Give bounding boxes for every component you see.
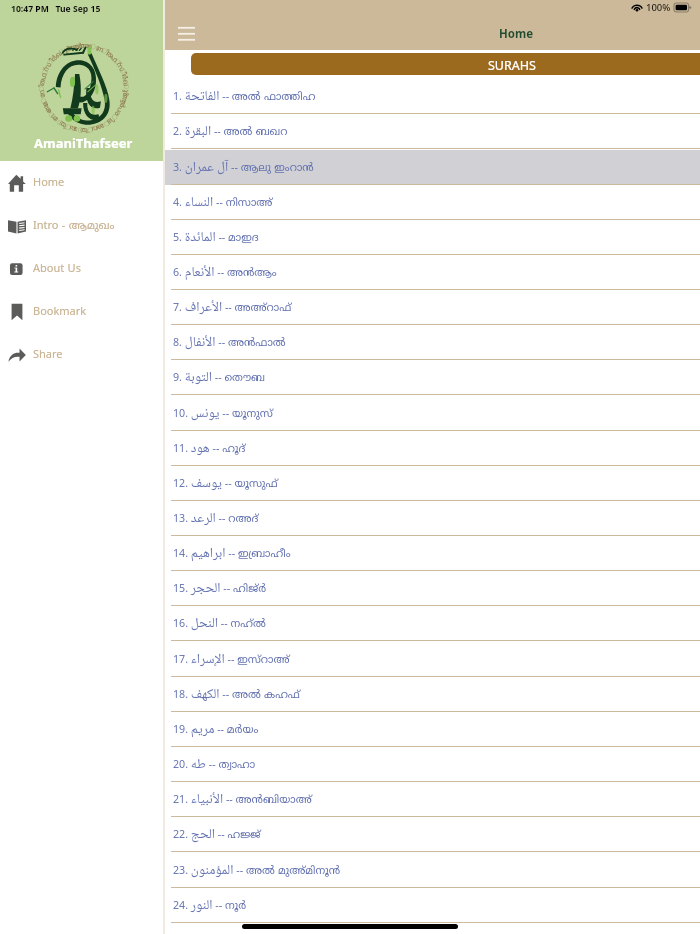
staticText: 16. النحل -- നഹ്ൽ (173, 612, 266, 635)
staticText: 14. ابراهيم -- ഇബ്രാഹീം (173, 542, 291, 565)
staticText: 17. الإسراء -- ഇസ്‌റാഅ് (173, 648, 290, 671)
button[interactable]: 7. الأعراف -- അഅ്‌റാഫ് (165, 290, 700, 325)
staticText: 15. الحجر -- ഹിജ്ർ (173, 577, 267, 600)
button[interactable]: 11. هود -- ഹൂദ് (165, 431, 700, 466)
staticText: 4. النساء -- നിസാഅ് (173, 191, 273, 214)
button[interactable]: About Us (8, 247, 163, 290)
button[interactable]: 17. الإسراء -- ഇസ്‌റാഅ് (165, 642, 700, 677)
button[interactable]: Share (8, 333, 163, 376)
staticText: 20. طه -- ത്വാഹാ (173, 753, 256, 776)
button[interactable]: 6. الأنعام -- അൻആം (165, 255, 700, 290)
staticText: 13. الرعد -- റഅദ് (173, 507, 259, 530)
staticText: 5. المائدة -- മാഇദ (173, 226, 259, 249)
button[interactable]: 1. الفاتحة -- അൽ ഫാത്തിഹ (165, 79, 700, 114)
button[interactable]: 13. الرعد -- റഅദ് (165, 501, 700, 536)
button[interactable]: 8. الأنفال -- അൻഫാൽ (165, 325, 700, 360)
staticText: 23. المؤمنون -- അൽ മുഅ്‌മിനൂൻ (173, 859, 341, 882)
button[interactable]: 24. النور -- നൂർ (165, 888, 700, 923)
staticText: 12. يوسف -- യൂസുഫ് (173, 472, 278, 495)
staticText: 100% (646, 1, 671, 14)
staticText: 10. يونس -- യൂനുസ് (173, 402, 273, 425)
button[interactable]: 5. المائدة -- മാഇദ (165, 220, 700, 255)
staticText: 11. هود -- ഹൂദ് (173, 437, 246, 460)
staticText: 1. الفاتحة -- അൽ ഫാത്തിഹ (173, 85, 316, 108)
staticText: AmaniThafseer (34, 134, 133, 152)
staticText: 18. الكهف -- അൽ കഹഫ് (173, 683, 300, 706)
staticText: SURAHS (488, 57, 536, 74)
button[interactable]: 15. الحجر -- ഹിജ്ർ (165, 571, 700, 606)
staticText: 24. النور -- നൂർ (173, 894, 247, 917)
button[interactable]: SURAHS (191, 53, 700, 75)
button[interactable]: Open navigation menu (169, 20, 203, 46)
staticText: Intro - ആമുഖം (33, 219, 115, 233)
button[interactable]: Home (8, 161, 163, 204)
staticText: 2. البقرة -- അൽ ബഖറ (173, 120, 288, 143)
button[interactable]: 20. طه -- ത്വാഹാ (165, 747, 700, 782)
staticText: 8. الأنفال -- അൻഫാൽ (173, 331, 286, 354)
staticText: 22. الحج -- ഹജ്ജ് (173, 823, 261, 846)
staticText: Home (33, 176, 65, 190)
button[interactable]: 22. الحج -- ഹജ്ജ് (165, 817, 700, 852)
button[interactable]: 23. المؤمنون -- അൽ മുഅ്‌മിനൂൻ (165, 853, 700, 888)
button[interactable]: 2. البقرة -- അൽ ബഖറ (165, 114, 700, 149)
button[interactable]: 14. ابراهيم -- ഇബ്രാഹീം (165, 536, 700, 571)
staticText: 7. الأعراف -- അഅ്‌റാഫ് (173, 296, 292, 319)
button[interactable]: 21. الأنبياء -- അൻബിയാഅ് (165, 782, 700, 817)
staticText: Share (33, 348, 63, 362)
button[interactable]: 9. التوبة -- തൌബ (165, 360, 700, 395)
staticText: 10:47 PM Tue Sep 15 (11, 3, 101, 15)
staticText: About Us (33, 262, 81, 276)
button[interactable]: Bookmark (8, 290, 163, 333)
button[interactable]: 12. يوسف -- യൂസുഫ് (165, 466, 700, 501)
staticText: Bookmark (33, 305, 87, 319)
staticText: 21. الأنبياء -- അൻബിയാഅ് (173, 788, 312, 811)
button[interactable]: 19. مريم -- മർയം (165, 712, 700, 747)
button[interactable]: 4. النساء -- നിസാഅ് (165, 185, 700, 220)
staticText: Home (499, 26, 534, 42)
staticText: 6. الأنعام -- അൻആം (173, 261, 277, 284)
staticText: 3. آل عمران -- ആലു ഇംറാൻ (173, 156, 314, 179)
button[interactable]: 3. آل عمران -- ആലു ഇംറാൻ (165, 150, 700, 185)
button[interactable]: 16. النحل -- നഹ്ൽ (165, 606, 700, 641)
staticText: 19. مريم -- മർയം (173, 718, 259, 741)
staticText: 9. التوبة -- തൌബ (173, 366, 266, 389)
button[interactable]: Intro - ആമുഖം (8, 204, 163, 247)
button[interactable]: 10. يونس -- യൂനുസ് (165, 396, 700, 431)
button[interactable]: 18. الكهف -- അൽ കഹഫ് (165, 677, 700, 712)
